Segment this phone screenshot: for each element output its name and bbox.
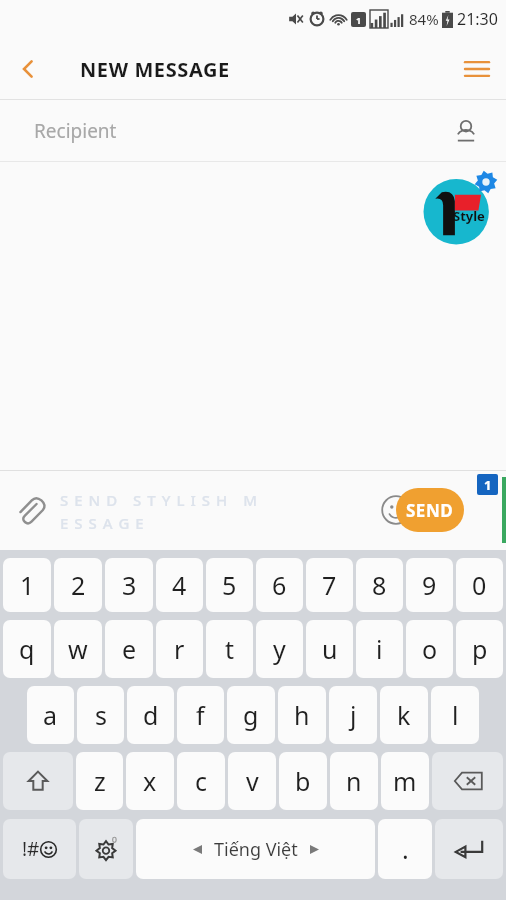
- button[interactable]: 7: [306, 558, 353, 612]
- staticText: e: [122, 632, 137, 666]
- button[interactable]: Enter: [435, 819, 503, 879]
- staticText: c: [195, 764, 208, 798]
- button[interactable]: u: [306, 620, 353, 678]
- staticText: y: [273, 632, 286, 666]
- staticText: 5: [222, 568, 237, 602]
- staticText: n: [346, 764, 362, 798]
- button[interactable]: Recipient: [0, 100, 506, 162]
- staticText: r: [174, 632, 185, 666]
- button[interactable]: x: [126, 752, 174, 810]
- staticText: Style: [453, 207, 485, 225]
- button[interactable]: 0: [456, 558, 503, 612]
- button[interactable]: k: [380, 686, 428, 744]
- button[interactable]: b: [279, 752, 327, 810]
- staticText: b: [295, 764, 311, 798]
- button[interactable]: n: [330, 752, 378, 810]
- button[interactable]: 8: [356, 558, 403, 612]
- staticText: 1: [20, 568, 35, 602]
- staticText: 7: [322, 568, 337, 602]
- button[interactable]: f: [177, 686, 224, 744]
- button[interactable]: g: [227, 686, 275, 744]
- button[interactable]: Menu: [448, 40, 506, 98]
- button[interactable]: Back: [0, 41, 56, 97]
- staticText: SEND: [406, 499, 454, 522]
- button[interactable]: Attach: [4, 484, 56, 536]
- button[interactable]: o: [406, 620, 453, 678]
- staticText: m: [393, 764, 417, 798]
- button[interactable]: m: [381, 752, 429, 810]
- staticText: k: [397, 698, 411, 732]
- button[interactable]: Shift: [3, 752, 73, 810]
- button[interactable]: Style app: [422, 170, 498, 246]
- staticText: l: [452, 698, 459, 732]
- staticText: Tiếng Việt: [214, 837, 298, 862]
- button[interactable]: 9: [406, 558, 453, 612]
- staticText: 8: [372, 568, 387, 602]
- button[interactable]: w: [54, 620, 102, 678]
- staticText: 1: [356, 14, 362, 26]
- staticText: x: [143, 764, 157, 798]
- staticText: g: [243, 698, 259, 732]
- button[interactable]: p: [456, 620, 503, 678]
- button[interactable]: d: [127, 686, 174, 744]
- button[interactable]: .: [378, 819, 432, 879]
- staticText: 84%: [409, 9, 439, 29]
- staticText: 3: [122, 568, 137, 602]
- button[interactable]: Symbols and emoji: [3, 819, 76, 879]
- button[interactable]: 4: [156, 558, 203, 612]
- staticText: h: [294, 698, 310, 732]
- staticText: 6: [272, 568, 287, 602]
- button[interactable]: Keyboard settings: [79, 819, 133, 879]
- button[interactable]: t: [206, 620, 253, 678]
- button[interactable]: c: [177, 752, 225, 810]
- staticText: f: [196, 698, 205, 732]
- button[interactable]: l: [431, 686, 479, 744]
- button[interactable]: j: [329, 686, 377, 744]
- staticText: 21:30: [457, 8, 498, 30]
- button[interactable]: Tiếng Việt: [136, 819, 375, 879]
- staticText: 2: [71, 568, 86, 602]
- staticText: NEW MESSAGE: [80, 56, 230, 83]
- staticText: a: [43, 698, 58, 732]
- staticText: o: [422, 632, 438, 666]
- button[interactable]: 3: [105, 558, 153, 612]
- staticText: !#: [22, 836, 40, 862]
- staticText: q: [19, 632, 35, 666]
- staticText: ESSAGE: [60, 513, 150, 533]
- button[interactable]: q: [3, 620, 51, 678]
- button[interactable]: 2: [54, 558, 102, 612]
- staticText: i: [376, 632, 383, 666]
- button[interactable]: Emoji: [374, 488, 418, 532]
- button[interactable]: z: [76, 752, 123, 810]
- staticText: u: [322, 632, 338, 666]
- staticText: 9: [422, 568, 437, 602]
- staticText: d: [143, 698, 159, 732]
- staticText: .: [402, 832, 409, 866]
- button[interactable]: h: [278, 686, 326, 744]
- button[interactable]: Backspace: [432, 752, 503, 810]
- staticText: v: [246, 764, 259, 798]
- staticText: t: [225, 632, 235, 666]
- staticText: z: [94, 764, 106, 798]
- staticText: 1: [484, 476, 492, 494]
- button[interactable]: y: [256, 620, 303, 678]
- button[interactable]: v: [228, 752, 276, 810]
- staticText: Recipient: [34, 118, 117, 144]
- staticText: s: [95, 698, 107, 732]
- button[interactable]: Add contact: [446, 111, 486, 151]
- button[interactable]: s: [77, 686, 124, 744]
- staticText: j: [350, 698, 357, 732]
- staticText: SEND STYLISH M: [60, 490, 264, 510]
- button[interactable]: e: [105, 620, 153, 678]
- staticText: w: [68, 632, 88, 666]
- button[interactable]: SEND: [396, 488, 464, 532]
- button[interactable]: a: [27, 686, 74, 744]
- staticText: p: [472, 632, 488, 666]
- staticText: 4: [172, 568, 187, 602]
- button[interactable]: r: [156, 620, 203, 678]
- staticText: 0: [472, 568, 487, 602]
- button[interactable]: 1: [3, 558, 51, 612]
- button[interactable]: 6: [256, 558, 303, 612]
- button[interactable]: 5: [206, 558, 253, 612]
- button[interactable]: i: [356, 620, 403, 678]
